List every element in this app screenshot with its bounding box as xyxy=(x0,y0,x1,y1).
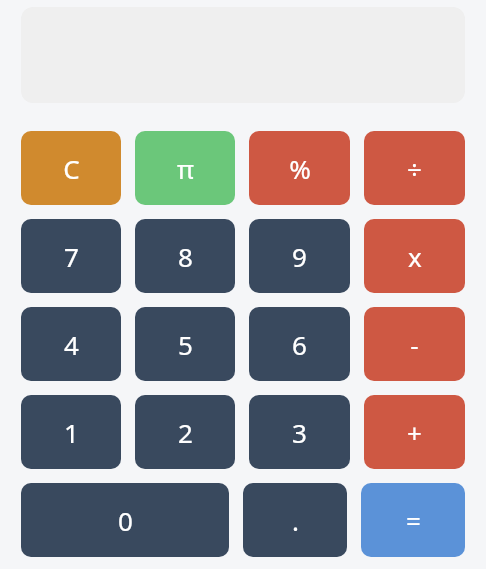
button[interactable]: 2 xyxy=(135,395,235,469)
button[interactable]: 0 xyxy=(21,483,229,557)
button[interactable]: π xyxy=(135,131,235,205)
staticText: 8 xyxy=(178,239,193,274)
button[interactable]: 1 xyxy=(21,395,121,469)
button[interactable]: 9 xyxy=(249,219,350,293)
button[interactable]: + xyxy=(364,395,465,469)
button[interactable]: 3 xyxy=(249,395,350,469)
button[interactable]: C xyxy=(21,131,121,205)
button[interactable]: . xyxy=(243,483,347,557)
staticText: 4 xyxy=(64,327,79,362)
button[interactable]: x xyxy=(364,219,465,293)
staticText: - xyxy=(410,327,419,362)
button[interactable]: 4 xyxy=(21,307,121,381)
button[interactable]: 7 xyxy=(21,219,121,293)
staticText: 9 xyxy=(292,239,307,274)
button[interactable]: 6 xyxy=(249,307,350,381)
button[interactable]: 5 xyxy=(135,307,235,381)
button[interactable]: 8 xyxy=(135,219,235,293)
staticText: C xyxy=(63,151,80,186)
staticText: 1 xyxy=(64,415,79,450)
staticText: + xyxy=(407,415,422,450)
button[interactable]: - xyxy=(364,307,465,381)
staticText: 7 xyxy=(64,239,79,274)
staticText: . xyxy=(292,503,299,538)
staticText: 6 xyxy=(292,327,307,362)
staticText: x xyxy=(408,239,422,274)
button[interactable]: = xyxy=(361,483,465,557)
button[interactable]: % xyxy=(249,131,350,205)
staticText: % xyxy=(289,151,311,186)
staticText: = xyxy=(406,503,421,538)
staticText: 0 xyxy=(118,503,133,538)
staticText: ÷ xyxy=(407,151,422,186)
staticText: 5 xyxy=(178,327,193,362)
staticText: π xyxy=(177,151,194,186)
staticText: 3 xyxy=(292,415,307,450)
button[interactable]: ÷ xyxy=(364,131,465,205)
staticText: 2 xyxy=(178,415,193,450)
